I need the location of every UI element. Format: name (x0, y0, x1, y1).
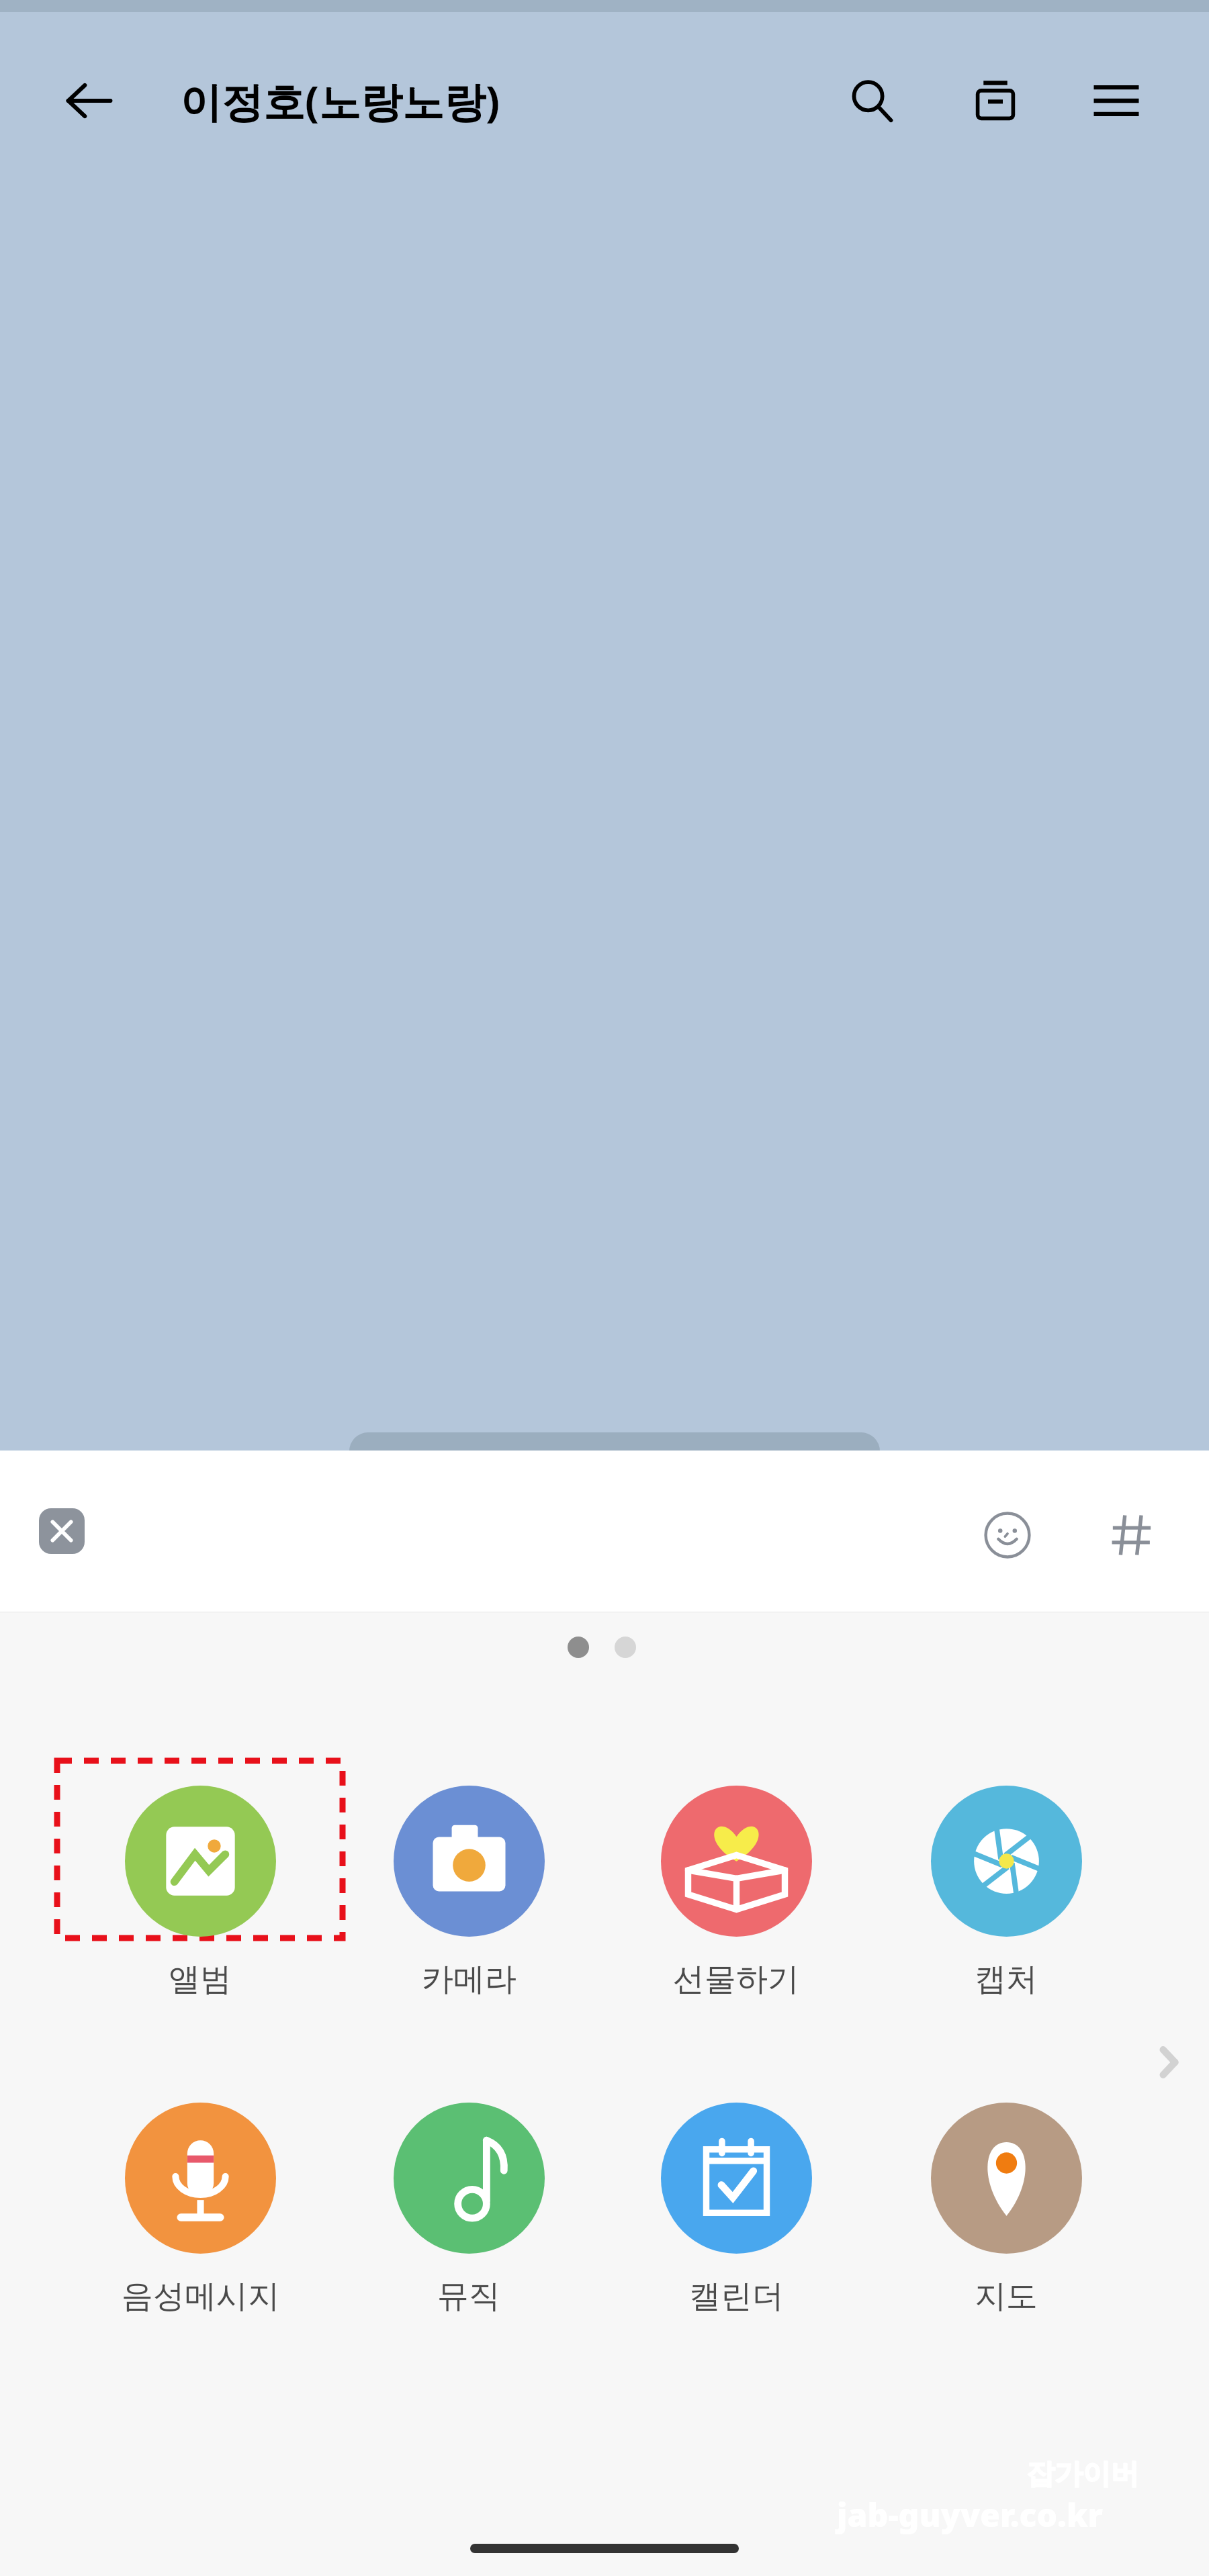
staticText: 음성메시지 (122, 2276, 279, 2316)
button[interactable]: Back (47, 59, 130, 142)
button[interactable]: 선물하기 (615, 1759, 857, 1999)
staticText: jab-guyver.co.kr (837, 2493, 1104, 2536)
button[interactable]: Menu (1075, 59, 1158, 142)
button[interactable]: 음성메시지 (79, 2076, 321, 2316)
button[interactable]: Search (830, 59, 913, 142)
staticText: 카메라 (422, 1960, 517, 1999)
staticText: 앨범 (169, 1960, 232, 1999)
button[interactable]: 캡처 (885, 1759, 1127, 1999)
staticText: 잡가이버 (1026, 2456, 1139, 2492)
staticText: 캘린더 (689, 2276, 784, 2316)
staticText: 뮤직 (437, 2276, 500, 2316)
staticText: 캡처 (975, 1960, 1038, 1999)
button[interactable]: Next page (1135, 2029, 1202, 2096)
button[interactable]: 지도 (885, 2076, 1127, 2316)
button[interactable]: Emoticon (967, 1495, 1048, 1575)
button[interactable]: Hashtag (1091, 1495, 1172, 1575)
staticText: 선물하기 (673, 1960, 799, 1999)
button[interactable]: 카메라 (348, 1759, 590, 1999)
staticText: 지도 (975, 2276, 1038, 2316)
button[interactable]: Close (39, 1508, 85, 1554)
staticText: 이정호(노랑노랑) (180, 73, 500, 130)
button[interactable]: 뮤직 (348, 2076, 590, 2316)
button[interactable]: 캘린더 (615, 2076, 857, 2316)
button[interactable]: Chat room archive (954, 59, 1037, 142)
button[interactable]: 앨범 (79, 1759, 321, 1999)
